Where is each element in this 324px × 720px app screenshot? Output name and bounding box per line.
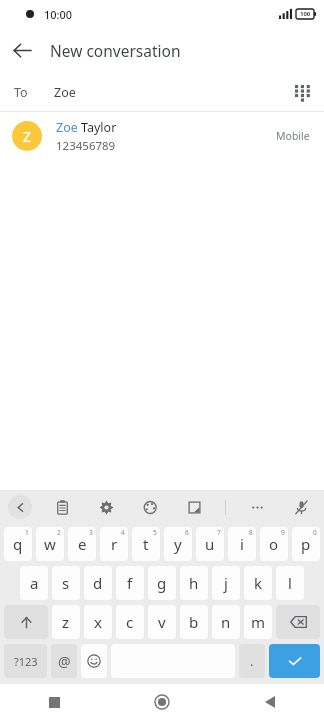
staticText: f (127, 573, 133, 593)
button[interactable]: j (212, 566, 240, 600)
staticText: 6 (185, 528, 189, 537)
button[interactable]: ?123 (4, 644, 47, 678)
button[interactable]: Recents (0, 684, 108, 720)
button[interactable]: c (116, 605, 144, 639)
staticText: n (221, 612, 231, 632)
staticText: 123456789 (56, 138, 116, 154)
button[interactable]: Home (108, 684, 216, 720)
staticText: d (93, 573, 103, 593)
button[interactable]: Emoji (81, 644, 107, 678)
button[interactable]: b (180, 605, 208, 639)
button[interactable]: v (148, 605, 176, 639)
staticText: To (14, 84, 28, 101)
staticText: h (189, 573, 199, 593)
staticText: Zoe (54, 84, 76, 101)
staticText: 1 (25, 528, 29, 537)
button[interactable]: Back (216, 684, 324, 720)
button[interactable]: a (20, 566, 48, 600)
staticText: g (157, 573, 167, 593)
button[interactable]: h (180, 566, 208, 600)
staticText: New conversation (50, 40, 181, 61)
staticText: 4 (121, 528, 125, 537)
button[interactable]: r (100, 527, 128, 561)
staticText: 0 (313, 528, 317, 537)
staticText: Z (23, 127, 32, 146)
button[interactable]: Theme (137, 494, 163, 520)
staticText: c (126, 612, 134, 632)
button[interactable]: w (36, 527, 64, 561)
button[interactable]: More (244, 494, 270, 520)
button[interactable]: m (244, 605, 272, 639)
button[interactable]: Resize (181, 494, 207, 520)
staticText: x (94, 612, 102, 632)
staticText: m (251, 612, 266, 632)
staticText: 3 (89, 528, 93, 537)
staticText: y (174, 534, 182, 554)
staticText: z (62, 612, 70, 632)
staticText: r (111, 534, 118, 554)
button[interactable]: Enter (269, 644, 320, 678)
staticText: t (143, 534, 149, 554)
staticText: Zoe Taylor (56, 119, 117, 136)
button[interactable]: z (52, 605, 80, 639)
button[interactable]: y (164, 527, 192, 561)
button[interactable]: p (292, 527, 320, 561)
button[interactable]: . (239, 644, 265, 678)
button[interactable]: Back (0, 28, 44, 72)
staticText: p (301, 534, 311, 554)
staticText: k (254, 573, 263, 593)
staticText: e (78, 534, 87, 554)
staticText: a (30, 573, 39, 593)
staticText: b (189, 612, 199, 632)
staticText: ?123 (14, 654, 38, 669)
button[interactable]: Backspace (276, 605, 320, 639)
staticText: 9 (281, 528, 285, 537)
button[interactable]: t (132, 527, 160, 561)
staticText: w (44, 534, 56, 554)
staticText: u (205, 534, 215, 554)
staticText: 10:00 (44, 7, 73, 22)
button[interactable]: x (84, 605, 112, 639)
staticText: j (224, 573, 228, 593)
staticText: 5 (153, 528, 157, 537)
button[interactable]: Settings (93, 494, 119, 520)
staticText: v (158, 612, 166, 632)
staticText: 7 (217, 528, 221, 537)
staticText: s (62, 573, 70, 593)
staticText: 2 (57, 528, 61, 537)
staticText: q (13, 534, 23, 554)
button[interactable]: e (68, 527, 96, 561)
button[interactable]: n (212, 605, 240, 639)
button[interactable]: s (52, 566, 80, 600)
button[interactable]: o (260, 527, 288, 561)
button[interactable]: l (276, 566, 304, 600)
button[interactable]: u (196, 527, 224, 561)
staticText: . (250, 652, 254, 670)
staticText: @ (58, 652, 71, 671)
button[interactable]: q (4, 527, 32, 561)
button[interactable]: Voice input off (288, 494, 314, 520)
staticText: 100 (300, 10, 311, 18)
button[interactable]: @ (51, 644, 77, 678)
button[interactable]: i (228, 527, 256, 561)
button[interactable]: Dialpad (280, 72, 324, 112)
button[interactable]: g (148, 566, 176, 600)
button[interactable]: Shift (4, 605, 48, 639)
staticText: l (288, 573, 292, 593)
staticText: 8 (249, 528, 253, 537)
button[interactable]: f (116, 566, 144, 600)
staticText: Mobile (276, 129, 310, 143)
button[interactable]: Z (0, 112, 324, 160)
staticText: o (269, 534, 279, 554)
button[interactable]: d (84, 566, 112, 600)
staticText: i (240, 534, 244, 554)
button[interactable]: Clipboard (49, 494, 75, 520)
button[interactable]: Previous (8, 495, 32, 519)
button[interactable]: k (244, 566, 272, 600)
